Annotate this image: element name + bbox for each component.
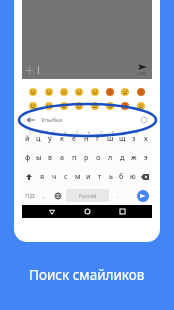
staticText: SMS bbox=[139, 71, 147, 76]
staticText: о bbox=[96, 153, 101, 163]
button[interactable]: Shift bbox=[22, 167, 36, 186]
button[interactable]: ю bbox=[127, 167, 138, 186]
staticText: т bbox=[98, 172, 102, 182]
staticText: ь bbox=[109, 172, 113, 182]
staticText: 3 bbox=[52, 130, 55, 135]
button[interactable]: ь bbox=[105, 167, 116, 186]
button[interactable]: у bbox=[44, 129, 56, 148]
other: Back bbox=[27, 116, 35, 124]
staticText: 6 bbox=[88, 130, 91, 135]
button[interactable]: й bbox=[22, 129, 33, 148]
staticText: м bbox=[75, 172, 81, 182]
staticText: ж bbox=[131, 153, 137, 163]
button[interactable]: Backspace bbox=[138, 167, 152, 186]
button[interactable]: п bbox=[68, 148, 80, 167]
button[interactable]: ы bbox=[33, 148, 44, 167]
button[interactable]: щ bbox=[116, 129, 128, 148]
button[interactable]: Change language bbox=[49, 186, 66, 205]
button[interactable]: ?123 bbox=[22, 186, 38, 205]
staticText: я bbox=[40, 172, 45, 182]
staticText: щ bbox=[119, 134, 126, 144]
button[interactable]: х bbox=[140, 129, 152, 148]
staticText: д bbox=[120, 153, 125, 163]
staticText: ч bbox=[52, 172, 57, 182]
button[interactable]: я bbox=[36, 167, 48, 186]
button[interactable]: а bbox=[56, 148, 68, 167]
staticText: р bbox=[84, 153, 89, 163]
staticText: ?123 bbox=[25, 193, 35, 199]
staticText: с bbox=[64, 172, 68, 182]
staticText: 0 bbox=[136, 130, 139, 135]
button[interactable]: ф bbox=[22, 148, 33, 167]
staticText: у bbox=[48, 134, 52, 144]
staticText: х bbox=[144, 134, 148, 144]
staticText: ф bbox=[25, 153, 31, 163]
other: Attach bbox=[26, 67, 33, 74]
staticText: Поиск смайликов bbox=[29, 266, 145, 284]
staticText: , bbox=[43, 192, 45, 200]
button[interactable]: Back bbox=[45, 205, 58, 218]
button[interactable]: ш bbox=[104, 129, 116, 148]
button[interactable]: о bbox=[92, 148, 104, 167]
staticText: к bbox=[60, 134, 64, 144]
staticText: л bbox=[108, 153, 113, 163]
staticText: г bbox=[96, 134, 100, 144]
staticText: ц bbox=[36, 134, 41, 144]
staticText: . bbox=[117, 192, 119, 200]
button[interactable]: ж bbox=[128, 148, 140, 167]
button[interactable]: р bbox=[80, 148, 92, 167]
staticText: ю bbox=[130, 172, 136, 182]
button[interactable]: Русский bbox=[66, 189, 109, 202]
staticText: 4 bbox=[64, 130, 67, 135]
staticText: 1 bbox=[29, 130, 32, 135]
staticText: а bbox=[60, 153, 64, 163]
button[interactable]: л bbox=[104, 148, 116, 167]
staticText: б bbox=[119, 172, 124, 182]
staticText: Улыбка bbox=[41, 116, 63, 124]
staticText: 2 bbox=[40, 130, 43, 135]
button[interactable]: н bbox=[80, 129, 92, 148]
staticText: 7 bbox=[100, 130, 103, 135]
button[interactable]: е bbox=[68, 129, 80, 148]
staticText: и bbox=[86, 172, 91, 182]
staticText: 5 bbox=[76, 130, 79, 135]
button[interactable]: ч bbox=[48, 167, 60, 186]
button[interactable]: м bbox=[72, 167, 83, 186]
button[interactable]: з bbox=[128, 129, 140, 148]
staticText: е bbox=[72, 134, 76, 144]
staticText: п bbox=[72, 153, 77, 163]
staticText: з bbox=[132, 134, 136, 144]
button[interactable]: Send bbox=[133, 186, 152, 205]
staticText: э bbox=[144, 153, 148, 163]
button[interactable]: э bbox=[140, 148, 152, 167]
button[interactable]: и bbox=[83, 167, 94, 186]
button[interactable]: с bbox=[60, 167, 72, 186]
button[interactable]: ц bbox=[33, 129, 44, 148]
staticText: Русский bbox=[79, 193, 97, 199]
staticText: й bbox=[25, 134, 30, 144]
button[interactable]: . bbox=[109, 186, 126, 205]
button[interactable]: Home bbox=[81, 205, 94, 218]
button[interactable]: , bbox=[38, 186, 49, 205]
button[interactable]: в bbox=[44, 148, 56, 167]
button[interactable]: Back bbox=[22, 110, 152, 129]
button[interactable]: к bbox=[56, 129, 68, 148]
staticText: 9 bbox=[124, 130, 127, 135]
button[interactable]: г bbox=[92, 129, 104, 148]
staticText: н bbox=[84, 134, 89, 144]
button[interactable]: т bbox=[94, 167, 105, 186]
button[interactable]: Recent apps bbox=[116, 205, 129, 218]
staticText: в bbox=[48, 153, 53, 163]
staticText: ш bbox=[107, 134, 114, 144]
button[interactable]: д bbox=[116, 148, 128, 167]
staticText: ы bbox=[36, 153, 42, 163]
button[interactable]: б bbox=[116, 167, 127, 186]
staticText: 8 bbox=[112, 130, 115, 135]
